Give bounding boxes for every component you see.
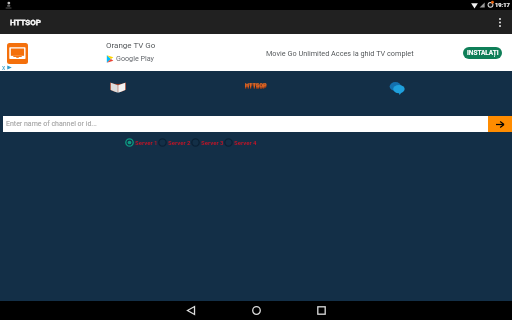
button[interactable]: More options — [489, 10, 511, 34]
staticText: Movie Go Unlimited Acces la ghid TV comp… — [266, 49, 414, 58]
staticText: Server 2 — [168, 139, 191, 146]
button[interactable]: Server 3 — [191, 137, 224, 147]
staticText: Server 3 — [201, 139, 224, 146]
staticText: HTTSOP — [245, 83, 267, 90]
staticText: Enter name of channel or id... — [6, 120, 97, 128]
staticText: HTTSOP — [10, 18, 41, 27]
staticText: Server 4 — [234, 139, 257, 146]
staticText: x — [2, 64, 6, 72]
button[interactable]: Server 4 — [224, 137, 257, 147]
button[interactable]: x — [0, 34, 512, 71]
button[interactable]: INSTALAȚI — [463, 47, 502, 59]
staticText: INSTALAȚI — [467, 49, 499, 57]
staticText: Server 1 — [135, 139, 158, 146]
staticText: Google Play — [116, 54, 155, 62]
staticText: HTTSOP — [245, 82, 267, 89]
button[interactable]: Home — [224, 301, 288, 320]
button[interactable]: Server 2 — [158, 137, 191, 147]
staticText: 19:17 — [495, 2, 510, 9]
button[interactable]: Enter name of channel or id... — [3, 116, 488, 132]
staticText: Orange TV Go — [106, 41, 156, 50]
staticText: HTTSOP — [245, 84, 267, 91]
button[interactable]: Back — [159, 301, 223, 320]
button[interactable]: Search — [488, 116, 512, 132]
button[interactable]: Server 1 — [125, 137, 158, 147]
button[interactable]: Recent apps — [289, 301, 353, 320]
button[interactable]: Chat — [389, 81, 405, 95]
button[interactable]: Guide — [110, 82, 126, 93]
